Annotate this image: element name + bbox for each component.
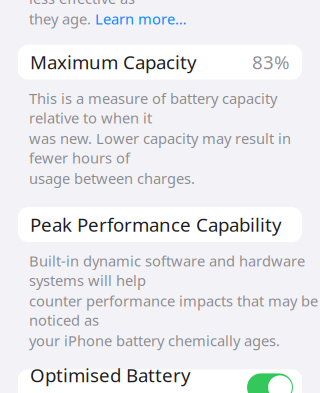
staticText: your iPhone battery chemically ages. <box>29 331 280 350</box>
staticText: Maximum Capacity <box>30 50 197 74</box>
staticText: This is a measure of battery capacity re… <box>29 89 277 128</box>
staticText: Peak Performance Capability <box>30 212 282 237</box>
button[interactable]: Maximum Capacity <box>18 45 302 80</box>
button[interactable]: Peak Performance Capability <box>18 207 302 242</box>
staticText: 83% <box>252 50 290 74</box>
staticText: Learn more… <box>95 9 187 29</box>
staticText: was new. Lower capacity may result in fe… <box>29 129 291 168</box>
staticText: consumable components that become less e… <box>29 0 293 8</box>
staticText: counter performance impacts that may be … <box>29 291 318 330</box>
button[interactable]: Learn more… <box>95 9 187 29</box>
staticText: usage between charges. <box>29 168 195 188</box>
staticText: Optimised Battery Charging <box>30 363 191 393</box>
button[interactable]: Optimised Battery Charging <box>247 373 293 393</box>
staticText: Built-in dynamic software and hardware s… <box>29 251 305 290</box>
staticText: they age. <box>29 9 95 29</box>
